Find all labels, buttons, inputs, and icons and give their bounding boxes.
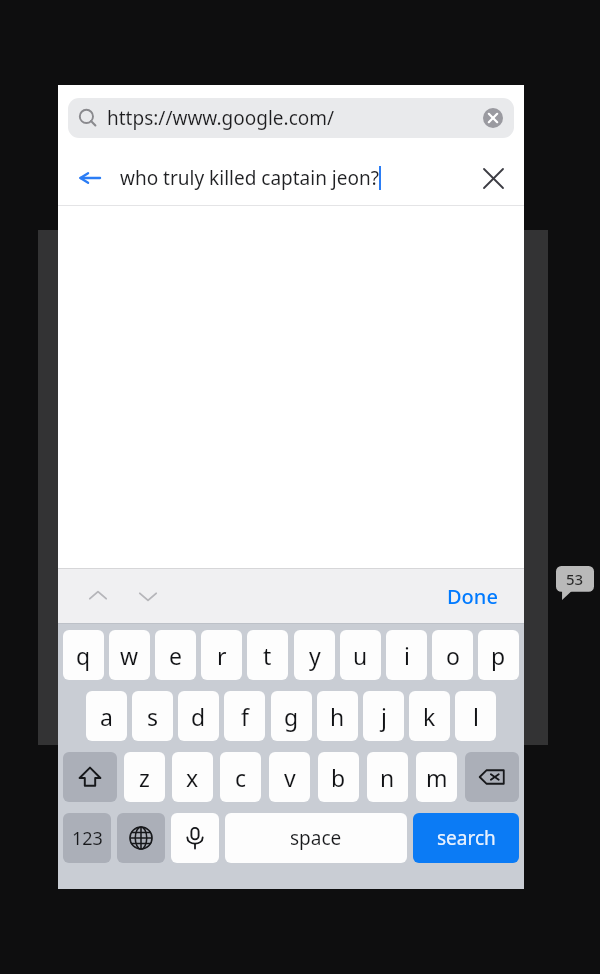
staticText: z — [139, 762, 150, 793]
staticText: g — [284, 701, 299, 732]
button[interactable]: e — [155, 630, 196, 680]
staticText: x — [186, 762, 199, 793]
staticText: h — [330, 701, 345, 732]
button[interactable]: n — [367, 752, 408, 802]
staticText: o — [446, 640, 460, 671]
button[interactable]: y — [294, 630, 335, 680]
staticText: s — [147, 701, 159, 732]
button[interactable]: z — [124, 752, 165, 802]
staticText: u — [353, 640, 368, 671]
button[interactable]: q — [63, 630, 104, 680]
button[interactable]: Clear address — [482, 107, 504, 129]
button[interactable]: 123 — [63, 813, 111, 863]
button[interactable]: Done — [441, 577, 504, 616]
button[interactable]: a — [86, 691, 127, 741]
button[interactable]: Previous field — [78, 576, 118, 616]
button[interactable]: Dictate — [171, 813, 219, 863]
staticText: 123 — [72, 826, 103, 851]
button[interactable]: b — [318, 752, 359, 802]
staticText: b — [331, 762, 346, 793]
button[interactable]: j — [363, 691, 404, 741]
staticText: r — [217, 640, 227, 671]
button[interactable]: t — [247, 630, 288, 680]
staticText: space — [290, 825, 342, 851]
button[interactable]: w — [109, 630, 150, 680]
button[interactable]: i — [386, 630, 427, 680]
button[interactable]: Change keyboard — [117, 813, 165, 863]
button[interactable]: u — [340, 630, 381, 680]
staticText: f — [241, 701, 249, 732]
staticText: q — [76, 640, 91, 671]
staticText: y — [309, 640, 321, 671]
staticText: d — [191, 701, 206, 732]
button[interactable]: search — [413, 813, 519, 863]
button[interactable]: Next field — [128, 576, 168, 616]
staticText: search — [437, 825, 496, 851]
staticText: 53 — [566, 569, 584, 589]
button[interactable]: space — [225, 813, 407, 863]
staticText: c — [235, 762, 247, 793]
staticText: l — [473, 701, 479, 732]
staticText: j — [381, 701, 387, 732]
button[interactable]: m — [416, 752, 457, 802]
staticText: v — [284, 762, 296, 793]
button[interactable]: Back — [72, 160, 108, 196]
button[interactable]: o — [432, 630, 473, 680]
staticText: Done — [447, 583, 498, 610]
button[interactable]: g — [271, 691, 312, 741]
staticText: t — [263, 640, 272, 671]
button[interactable]: l — [455, 691, 496, 741]
staticText: who truly killed captain jeon? — [120, 165, 379, 191]
button[interactable]: s — [132, 691, 173, 741]
button[interactable]: h — [317, 691, 358, 741]
button[interactable]: f — [224, 691, 265, 741]
button[interactable]: Close find bar — [476, 161, 510, 195]
button[interactable]: Key — [465, 752, 519, 802]
staticText: k — [423, 701, 436, 732]
button[interactable]: d — [178, 691, 219, 741]
staticText: w — [120, 640, 139, 671]
staticText: m — [426, 762, 448, 793]
button[interactable]: c — [220, 752, 261, 802]
button[interactable]: r — [201, 630, 242, 680]
staticText: i — [404, 640, 410, 671]
staticText: e — [169, 640, 182, 671]
button[interactable]: https://www.google.com/ — [68, 98, 514, 138]
staticText: n — [380, 762, 395, 793]
staticText: https://www.google.com/ — [107, 105, 482, 131]
button[interactable]: v — [269, 752, 310, 802]
staticText: a — [100, 701, 113, 732]
button[interactable]: x — [172, 752, 213, 802]
button[interactable]: p — [478, 630, 519, 680]
staticText: p — [491, 640, 506, 671]
button[interactable]: k — [409, 691, 450, 741]
button[interactable]: Key — [63, 752, 117, 802]
